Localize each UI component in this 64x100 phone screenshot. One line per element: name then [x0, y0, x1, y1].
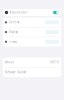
staticText: About: [5, 60, 14, 64]
staticText: iOS 18: [50, 60, 59, 64]
button[interactable]: Software Update: [3, 67, 61, 77]
staticText: Privacy: [9, 40, 17, 43]
staticText: General: [9, 20, 20, 24]
button[interactable]: About: [3, 57, 61, 67]
staticText: Software Update: [5, 70, 27, 74]
staticText: Alex Johnson: [10, 11, 28, 14]
button[interactable]: Alex Johnson: [3, 9, 61, 16]
staticText: Display: [9, 30, 18, 34]
button[interactable]: Display: [3, 27, 61, 37]
button[interactable]: General: [3, 18, 61, 27]
button[interactable]: Privacy: [3, 37, 61, 46]
